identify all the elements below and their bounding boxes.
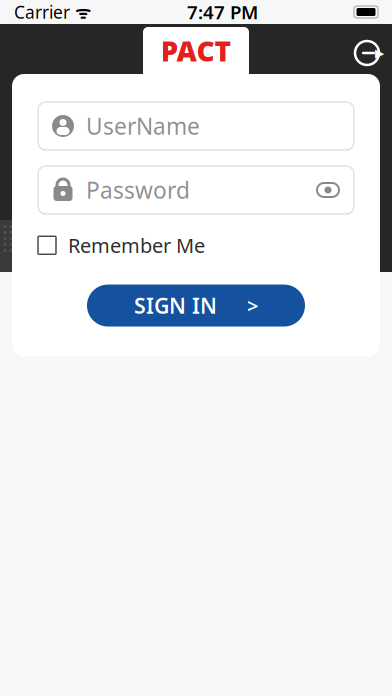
button[interactable]: Sign Out <box>350 24 392 68</box>
staticText: 7:47 PM <box>187 0 258 24</box>
staticText: UserName <box>86 111 200 141</box>
staticText: Carrier <box>14 0 70 23</box>
button[interactable]: SIGN IN <box>87 285 305 327</box>
staticText: ▶ <box>375 46 384 60</box>
staticText: ᯤ <box>70 0 91 23</box>
staticText: > <box>247 292 258 319</box>
staticText: PACT <box>160 32 231 69</box>
staticText: Remember Me <box>68 232 205 259</box>
button[interactable]: Password, show password <box>38 166 354 214</box>
staticText: SIGN IN <box>134 291 217 320</box>
staticText: Password <box>86 175 190 205</box>
button[interactable]: Remember Me <box>38 214 354 263</box>
